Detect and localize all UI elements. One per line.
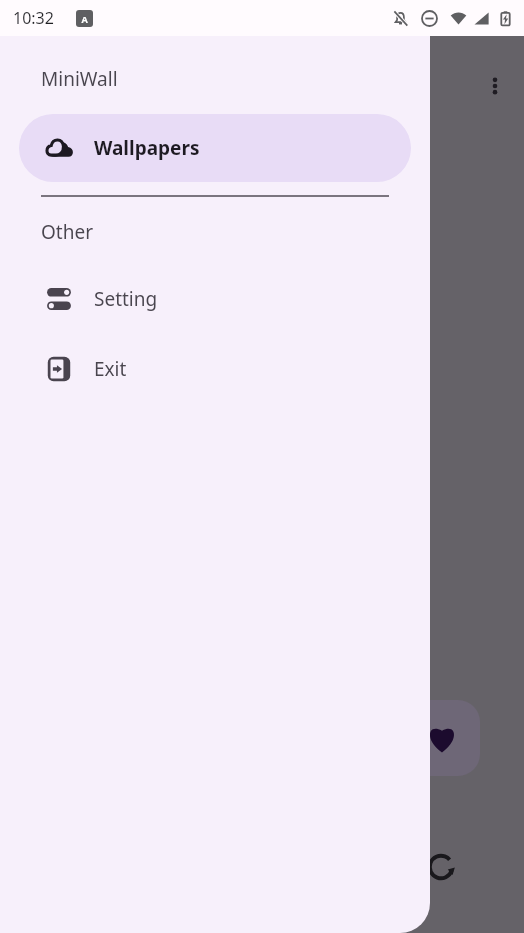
button[interactable]: Wallpapers xyxy=(19,114,411,182)
button[interactable]: More options xyxy=(471,62,519,110)
button[interactable]: Exit xyxy=(19,341,411,397)
staticText: Exit xyxy=(94,356,127,382)
staticText: Wallpapers xyxy=(94,135,200,161)
button[interactable]: Setting xyxy=(19,271,411,327)
staticText: A xyxy=(81,13,88,25)
staticText: MiniWall xyxy=(41,66,118,92)
button[interactable]: Favourite xyxy=(404,700,480,776)
staticText: Other xyxy=(41,219,94,245)
staticText: 10:32 xyxy=(13,7,54,29)
button[interactable]: Refresh xyxy=(414,840,468,894)
staticText: Setting xyxy=(94,286,158,312)
